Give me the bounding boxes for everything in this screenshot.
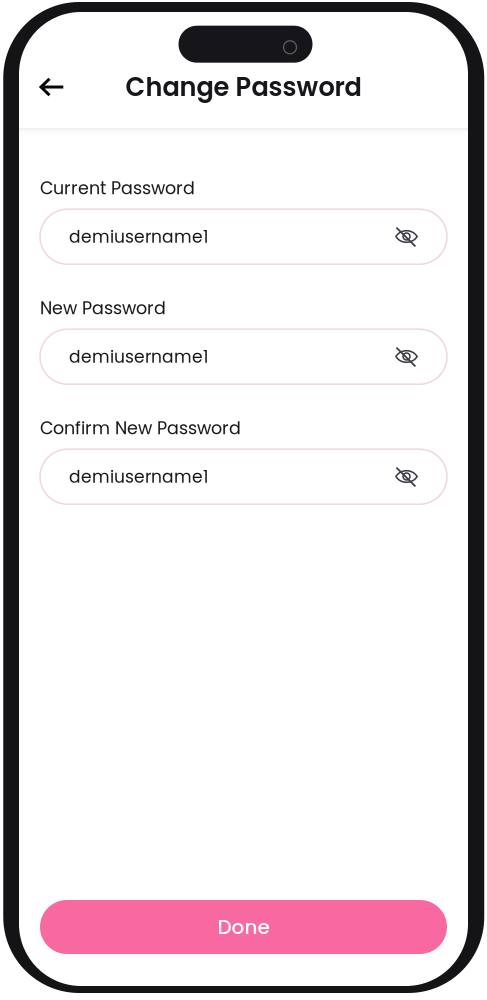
staticText: Current Password: [40, 176, 195, 200]
button[interactable]: demiusername1: [40, 449, 447, 504]
button[interactable]: demiusername1: [40, 329, 447, 384]
button[interactable]: Done: [40, 900, 447, 954]
staticText: demiusername1: [69, 345, 208, 369]
staticText: Confirm New Password: [40, 416, 241, 440]
staticText: demiusername1: [69, 465, 208, 489]
button[interactable]: Back: [30, 65, 74, 109]
staticText: Change Password: [125, 69, 361, 105]
staticText: Done: [217, 913, 269, 941]
staticText: demiusername1: [69, 225, 208, 249]
button[interactable]: demiusername1: [40, 209, 447, 264]
staticText: New Password: [40, 296, 166, 320]
